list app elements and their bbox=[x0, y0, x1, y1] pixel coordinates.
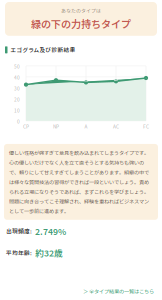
staticText: 平均年齢: bbox=[6, 248, 32, 257]
staticText: 優しい性格が強すぎて意見を飲み込まれてしまうタイプです。心の優しいだけでなく人を… bbox=[9, 149, 149, 215]
staticText: あなたのタイプは bbox=[61, 7, 101, 14]
staticText: 出現頻度: bbox=[6, 227, 32, 235]
button[interactable]: ＞ 全タイプ結果の一覧はこちら bbox=[0, 287, 162, 300]
staticText: 50 bbox=[14, 63, 20, 70]
staticText: NP bbox=[53, 123, 59, 130]
staticText: 約32歳 bbox=[35, 246, 63, 259]
staticText: 緑の下の力持ちタイプ bbox=[31, 16, 131, 31]
staticText: 0 bbox=[17, 118, 20, 125]
staticText: AC bbox=[113, 123, 119, 130]
staticText: 20 bbox=[14, 96, 20, 103]
staticText: 40 bbox=[14, 74, 20, 81]
staticText: エゴグラム及び診断結果 bbox=[10, 46, 75, 54]
staticText: 30 bbox=[14, 85, 20, 92]
staticText: FC bbox=[143, 123, 149, 130]
staticText: ＞ 全タイプ結果の一覧はこちら bbox=[83, 287, 154, 295]
staticText: 10 bbox=[14, 107, 20, 114]
staticText: CP bbox=[23, 123, 29, 130]
staticText: 2.749% bbox=[35, 225, 66, 237]
staticText: A bbox=[84, 123, 87, 130]
